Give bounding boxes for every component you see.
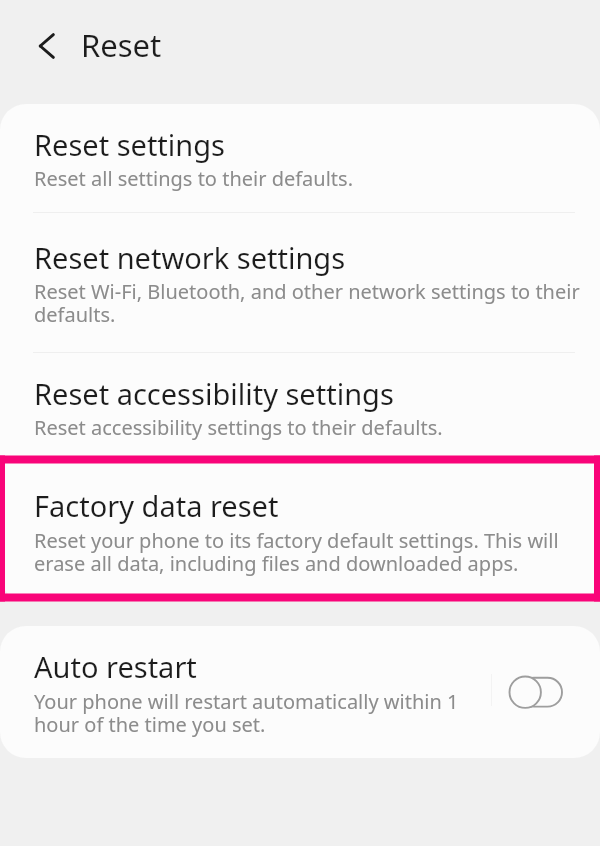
staticText: Factory data reset <box>34 486 279 525</box>
button[interactable]: Navigate up <box>30 30 62 62</box>
button[interactable]: Reset accessibility settings <box>0 355 600 465</box>
staticText: Reset your phone to its factory default … <box>34 527 560 577</box>
staticText: Reset all settings to their defaults. <box>34 165 353 192</box>
button[interactable]: Auto restart switch, off <box>498 658 580 726</box>
staticText: Auto restart <box>34 647 197 686</box>
button[interactable]: Reset settings <box>0 104 600 214</box>
staticText: Reset network settings <box>34 238 346 277</box>
staticText: Your phone will restart automatically wi… <box>34 688 460 738</box>
staticText: Reset accessibility settings to their de… <box>34 414 443 441</box>
button[interactable]: Reset network settings <box>0 215 600 354</box>
staticText: Reset <box>81 24 162 66</box>
button[interactable]: Auto restart <box>0 626 600 758</box>
staticText: Reset Wi-Fi, Bluetooth, and other networ… <box>34 278 580 328</box>
button[interactable]: Factory data reset <box>0 466 600 601</box>
staticText: Reset accessibility settings <box>34 374 394 413</box>
staticText: Reset settings <box>34 125 225 164</box>
